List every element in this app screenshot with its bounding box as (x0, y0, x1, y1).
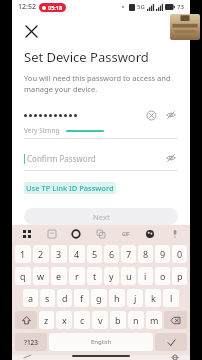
button[interactable]: Close (20, 20, 42, 42)
button[interactable]: e (51, 267, 67, 285)
staticText: 9 (160, 248, 166, 260)
button[interactable]: Use TP Link ID Password (24, 182, 116, 194)
staticText: g (96, 292, 102, 304)
button[interactable]: z (39, 311, 54, 329)
button[interactable]: Show password (164, 108, 178, 122)
button[interactable]: Clear password (144, 108, 158, 122)
staticText: 5 (92, 248, 98, 260)
staticText: z (44, 314, 49, 326)
staticText: You will need this password to access an… (24, 73, 171, 94)
staticText: k (151, 292, 156, 304)
button[interactable]: 7 (121, 245, 136, 263)
button[interactable]: 3 (51, 245, 67, 263)
button[interactable]: y (104, 267, 119, 285)
button[interactable]: n (128, 311, 144, 329)
button[interactable]: t (87, 267, 102, 285)
button[interactable]: o (155, 267, 170, 285)
button[interactable]: Change language (170, 355, 180, 360)
button[interactable]: Shift (15, 311, 37, 329)
staticText: w (37, 270, 45, 282)
button[interactable]: v (92, 311, 108, 329)
staticText: Next (93, 212, 110, 222)
button[interactable]: Translate (94, 227, 108, 241)
staticText: 2 (38, 248, 44, 260)
button[interactable]: m (146, 311, 162, 329)
staticText: i (144, 270, 147, 282)
button[interactable]: GIF (119, 227, 133, 241)
button[interactable]: 9 (155, 245, 170, 263)
button[interactable]: q (15, 267, 31, 285)
staticText: 12:52 (18, 2, 36, 12)
button[interactable]: Voice input (168, 227, 182, 241)
staticText: j (134, 292, 137, 304)
staticText: u (126, 270, 132, 282)
button[interactable]: 8 (138, 245, 153, 263)
button[interactable]: Next (24, 208, 178, 225)
button[interactable]: Video thumbnail (170, 14, 200, 40)
staticText: l (170, 292, 173, 304)
button[interactable]: l (163, 289, 179, 307)
staticText: t (93, 270, 97, 282)
staticText: Set Device Password (24, 48, 149, 66)
button[interactable]: Hide keyboard (22, 355, 32, 360)
button[interactable]: 6 (104, 245, 119, 263)
button[interactable]: r (69, 267, 85, 285)
staticText: m (150, 314, 159, 326)
button[interactable]: 1 (15, 245, 31, 263)
staticText: o (160, 270, 166, 282)
staticText: n (133, 314, 139, 326)
button[interactable]: 2 (33, 245, 49, 263)
staticText: 8 (143, 248, 149, 260)
button[interactable]: ?123 (15, 333, 47, 351)
button[interactable]: w (33, 267, 49, 285)
staticText: a (28, 292, 34, 304)
staticText: 73 (177, 3, 184, 11)
button[interactable]: Clipboard (45, 227, 59, 241)
staticText: 7 (126, 248, 132, 260)
button[interactable]: x (56, 311, 72, 329)
button[interactable]: 5 (87, 245, 102, 263)
button[interactable]: 0 (172, 245, 187, 263)
staticText: 3 (56, 248, 62, 260)
staticText: s (45, 292, 50, 304)
staticText: x (62, 314, 67, 326)
button[interactable]: h (109, 289, 125, 307)
staticText: English (91, 338, 112, 346)
button[interactable]: j (127, 289, 143, 307)
staticText: v (98, 314, 103, 326)
button[interactable]: Enter (155, 333, 187, 351)
staticText: b (115, 314, 121, 326)
staticText: 5G (137, 3, 145, 11)
staticText: q (20, 270, 26, 282)
button[interactable]: i (138, 267, 153, 285)
staticText: f (80, 292, 84, 304)
staticText: 1 (20, 248, 26, 260)
button[interactable]: Settings (69, 227, 83, 241)
staticText: GIF (122, 231, 130, 237)
button[interactable]: 4 (69, 245, 85, 263)
button[interactable]: Themes (143, 227, 157, 241)
button[interactable]: f (74, 289, 89, 307)
button[interactable]: g (91, 289, 107, 307)
staticText: ?123 (24, 338, 39, 347)
button[interactable]: c (74, 311, 90, 329)
staticText: d (62, 292, 68, 304)
button[interactable]: p (172, 267, 187, 285)
staticText: p (177, 270, 183, 282)
staticText: c (80, 314, 85, 326)
staticText: h (114, 292, 120, 304)
staticText: Confirm Password (27, 153, 96, 164)
staticText: Use TP Link ID Password (26, 183, 114, 193)
button[interactable]: Keyboard layouts (20, 227, 34, 241)
button[interactable]: Show confirm password (164, 151, 178, 165)
button[interactable]: d (57, 289, 72, 307)
button[interactable]: s (40, 289, 55, 307)
button[interactable]: u (121, 267, 136, 285)
staticText: r (75, 270, 79, 282)
staticText: 4 (74, 248, 80, 260)
button[interactable]: a (23, 289, 38, 307)
button[interactable]: Backspace (164, 311, 187, 329)
button[interactable]: b (110, 311, 126, 329)
button[interactable]: k (145, 289, 161, 307)
button[interactable]: English (49, 333, 153, 351)
